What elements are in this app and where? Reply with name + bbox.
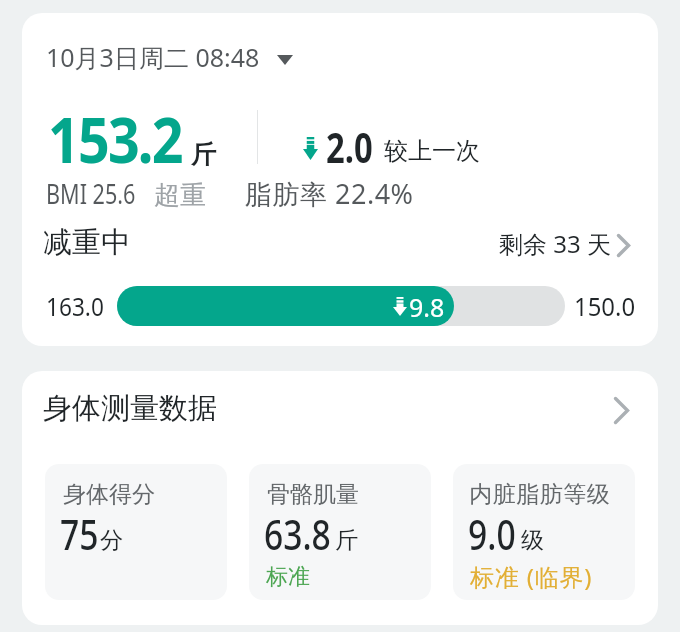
staticText: 脂肪率 22.4% [245,175,414,212]
staticText: 标准 [266,563,310,591]
staticText: 2.0 [326,118,373,175]
staticText: 斤 [191,139,216,170]
staticText: 较上一次 [384,136,480,166]
staticText: 分 [100,526,123,555]
staticText: 63.8 [264,506,331,562]
button[interactable]: 骨骼肌量 [249,464,431,600]
button[interactable]: 10月3日周二 08:48 [42,37,332,79]
button[interactable]: 内脏脂肪等级 [453,464,635,600]
staticText: 内脏脂肪等级 [469,480,610,509]
staticText: 9.8 [409,290,445,324]
staticText: 剩余 33 天 [499,227,611,260]
staticText: 身体得分 [63,480,155,509]
staticText: 超重 [154,179,206,212]
staticText: 斤 [335,526,358,555]
staticText: 级 [521,526,544,555]
staticText: 减重中 [43,224,130,261]
staticText: 9.0 [468,506,516,562]
staticText: 150.0 [574,288,636,323]
staticText: 153.2 [48,96,182,182]
staticText: 骨骼肌量 [267,480,359,509]
staticText: 标准 (临界) [470,560,593,593]
button[interactable]: 减重中 [38,221,642,265]
staticText: 10月3日周二 08:48 [46,40,260,74]
staticText: 75 [60,506,98,562]
button[interactable]: 身体得分 [45,464,227,600]
staticText: 身体测量数据 [43,390,217,427]
button[interactable]: 身体测量数据 [36,385,644,433]
staticText: BMI 25.6 [46,175,136,212]
staticText: 163.0 [46,288,104,323]
